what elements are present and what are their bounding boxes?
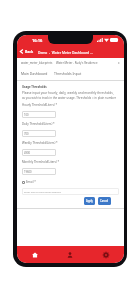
staticText: Usage Thresholds <box>22 85 47 89</box>
staticText: 100 <box>24 113 29 117</box>
staticText: Water Meter - Rudy's Residence <box>56 61 98 65</box>
staticText: x <box>118 61 120 65</box>
staticText: enter one or more email address <box>24 190 61 193</box>
staticText: Daily Threshold(Liters) * <box>22 122 55 126</box>
staticText: Apply <box>86 199 93 203</box>
staticText: as you wish to track in the water usage.… <box>22 96 116 100</box>
button[interactable]: Profile <box>52 246 88 263</box>
button[interactable]: Home <box>17 246 52 263</box>
staticText: Monthly Threshold(Liters) * <box>22 160 60 164</box>
button[interactable]: Main Dashboard <box>17 68 51 79</box>
staticText: 700 <box>24 132 29 136</box>
staticText: Email * <box>26 180 36 184</box>
staticText: water_meter_blueprints <box>21 61 53 65</box>
button[interactable]: Back <box>17 47 35 56</box>
staticText: 4900 <box>24 151 30 155</box>
staticText: Main Dashboard <box>21 71 48 76</box>
staticText: 19600 <box>24 170 32 174</box>
staticText: Hourly Threshold(Liters) * <box>22 103 58 107</box>
button[interactable]: Settings <box>88 246 124 263</box>
button[interactable]: Apply <box>84 197 95 205</box>
staticText: Back <box>25 49 34 54</box>
staticText: Thresholds Input <box>54 71 82 76</box>
staticText: Please input your hourly, daily, weekly … <box>22 91 114 95</box>
button[interactable]: Cancel <box>98 197 111 205</box>
staticText: Demo - Water Meter Dashboard ... <box>38 50 93 54</box>
staticText: Weekly Threshold(Liters) * <box>22 141 58 145</box>
staticText: Cancel <box>100 199 109 203</box>
button[interactable]: Email * <box>22 179 36 185</box>
button[interactable]: Thresholds Input <box>51 68 85 79</box>
staticText: 16:16 <box>32 38 43 43</box>
